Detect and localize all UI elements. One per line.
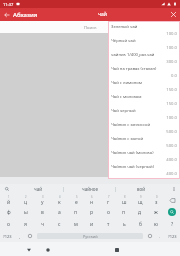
staticText: чайное [82, 186, 98, 192]
staticText: з [155, 199, 158, 206]
staticText: 500.0 [111, 129, 177, 134]
button[interactable]: 5 [68, 194, 84, 206]
staticText: п [122, 209, 126, 216]
button[interactable]: Clear [167, 8, 180, 21]
staticText: чай [98, 11, 107, 18]
staticText: чай [34, 186, 42, 192]
button[interactable]: 0 [148, 194, 164, 206]
staticText: 0 [156, 195, 158, 199]
staticText: р [90, 209, 94, 216]
button[interactable]: чай [13, 184, 63, 194]
button[interactable]: , [15, 230, 25, 242]
button[interactable]: Search [164, 206, 180, 218]
button[interactable]: Home [41, 243, 54, 256]
button[interactable]: ы [17, 206, 34, 218]
button[interactable]: 7 [100, 194, 116, 206]
button[interactable]: ю [148, 218, 164, 230]
button[interactable]: и [84, 218, 100, 230]
button[interactable]: б [132, 218, 148, 230]
button[interactable]: а [51, 206, 68, 218]
button[interactable]: 6 [84, 194, 100, 206]
button[interactable]: в [34, 206, 51, 218]
staticText: ш [122, 199, 127, 206]
staticText: ы [24, 209, 28, 216]
staticText: 8 [124, 195, 126, 199]
button[interactable]: Чёрный чай [109, 36, 179, 50]
staticText: с [58, 221, 61, 228]
button[interactable]: м [68, 218, 84, 230]
button[interactable]: чайное [64, 184, 115, 194]
button[interactable]: 1 [0, 194, 17, 206]
staticText: . [159, 234, 161, 239]
staticText: Поиск [84, 25, 97, 31]
button[interactable]: Back [22, 243, 35, 256]
staticText: 400.0 [111, 157, 177, 162]
staticText: 6 [91, 195, 93, 199]
staticText: е [75, 199, 78, 206]
button[interactable]: Зеленый чай [109, 22, 179, 36]
button[interactable]: Backspace [164, 194, 180, 206]
button[interactable]: ?123 [0, 230, 15, 242]
button[interactable]: ж [148, 206, 164, 218]
staticText: 2 [25, 195, 27, 199]
button[interactable]: Recent apps [110, 243, 123, 256]
staticText: о [107, 209, 110, 216]
staticText: 300.0 [111, 59, 177, 64]
button[interactable]: о [100, 206, 116, 218]
staticText: Зеленый чай [111, 24, 138, 30]
button[interactable]: 4 [51, 194, 68, 206]
staticText: 150.0 [111, 101, 177, 106]
button[interactable]: ?123 [165, 230, 180, 242]
button[interactable]: Чай с молоком [109, 92, 179, 106]
button[interactable]: о [0, 218, 17, 230]
button[interactable]: р [84, 206, 100, 218]
staticText: д [138, 209, 142, 216]
button[interactable]: Чайник чай (черный) [109, 162, 179, 176]
button[interactable]: я [17, 218, 34, 230]
button[interactable]: вой [116, 184, 167, 194]
button[interactable]: п [68, 206, 84, 218]
button[interactable]: Чайник с мятой [109, 134, 179, 148]
staticText: 500.0 [111, 143, 177, 148]
button[interactable]: ь [116, 218, 132, 230]
button[interactable]: Emoji [25, 230, 35, 242]
button[interactable]: т [100, 218, 116, 230]
staticText: б [139, 221, 142, 228]
button[interactable]: д [132, 206, 148, 218]
button[interactable]: с [51, 218, 68, 230]
staticText: ь [123, 221, 126, 228]
button[interactable]: Чай на травах (стакан) [109, 64, 179, 78]
button[interactable]: ? [164, 218, 180, 230]
staticText: ?123 [168, 234, 177, 239]
button[interactable]: Русский [37, 233, 143, 239]
button[interactable]: чай [98, 8, 107, 21]
button[interactable]: Voice input [0, 184, 13, 194]
button[interactable]: Settings [145, 230, 155, 242]
button[interactable]: Чай с лимоном [109, 78, 179, 92]
button[interactable]: 2 [17, 194, 34, 206]
button[interactable]: 3 [34, 194, 51, 206]
staticText: ?123 [3, 234, 12, 239]
button[interactable]: More suggestions [167, 184, 180, 194]
staticText: й [7, 199, 11, 206]
staticText: 0.0 [111, 73, 177, 78]
button[interactable]: 9 [132, 194, 148, 206]
staticText: а [58, 209, 61, 216]
button[interactable]: 8 [116, 194, 132, 206]
staticText: т [107, 221, 110, 228]
button[interactable]: Чайник с мелиссой [109, 120, 179, 134]
staticText: Чайник чай (черный) [111, 164, 154, 170]
staticText: Абхазия [13, 11, 38, 19]
button[interactable]: Back [0, 8, 13, 21]
button[interactable]: п [116, 206, 132, 218]
staticText: вой [137, 186, 146, 192]
button[interactable]: Чайник чай (молоко) [109, 148, 179, 162]
staticText: Чай на травах (стакан) [111, 66, 157, 72]
button[interactable]: ф [0, 206, 17, 218]
button[interactable]: ч [34, 218, 51, 230]
button[interactable]: чайник 1/400,раз.чай [109, 50, 179, 64]
staticText: у [41, 199, 44, 206]
button[interactable]: Чай черный [109, 106, 179, 120]
staticText: ю [154, 221, 158, 228]
